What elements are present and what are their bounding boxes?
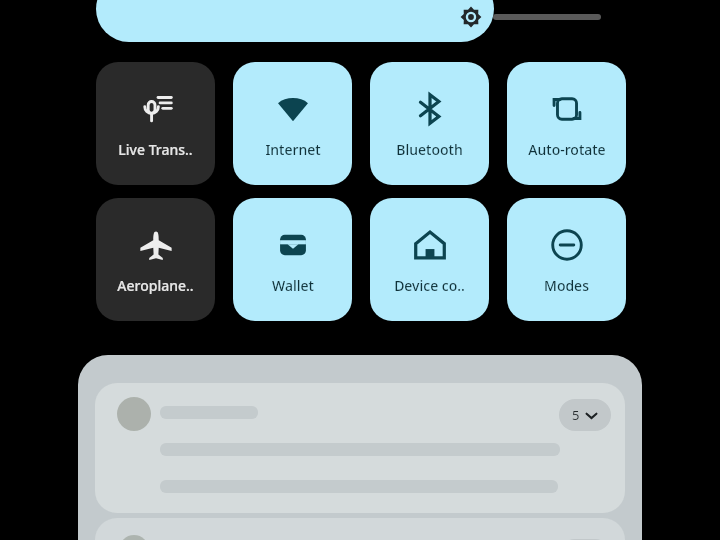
button[interactable]: Device co..: [370, 198, 489, 321]
button[interactable]: Modes: [507, 198, 626, 321]
staticText: Wallet: [272, 276, 314, 295]
staticText: Aeroplane..: [117, 276, 194, 295]
staticText: Auto-rotate: [528, 140, 606, 159]
button[interactable]: Wallet: [233, 198, 352, 321]
staticText: Live Trans..: [118, 140, 193, 159]
staticText: Internet: [265, 140, 321, 159]
staticText: Bluetooth: [396, 140, 463, 159]
other: Auto brightness: [458, 4, 484, 30]
button[interactable]: Bluetooth: [370, 62, 489, 185]
staticText: 5: [572, 406, 580, 424]
button[interactable]: 5: [559, 399, 611, 431]
button[interactable]: Live Trans..: [96, 62, 215, 185]
staticText: Device co..: [394, 276, 465, 295]
button[interactable]: Auto-rotate: [507, 62, 626, 185]
button[interactable]: 5: [95, 383, 625, 513]
button[interactable]: Aeroplane..: [96, 198, 215, 321]
staticText: Modes: [544, 276, 589, 295]
button[interactable]: Brightness: [96, 0, 494, 42]
button[interactable]: [95, 518, 625, 540]
button[interactable]: Internet: [233, 62, 352, 185]
